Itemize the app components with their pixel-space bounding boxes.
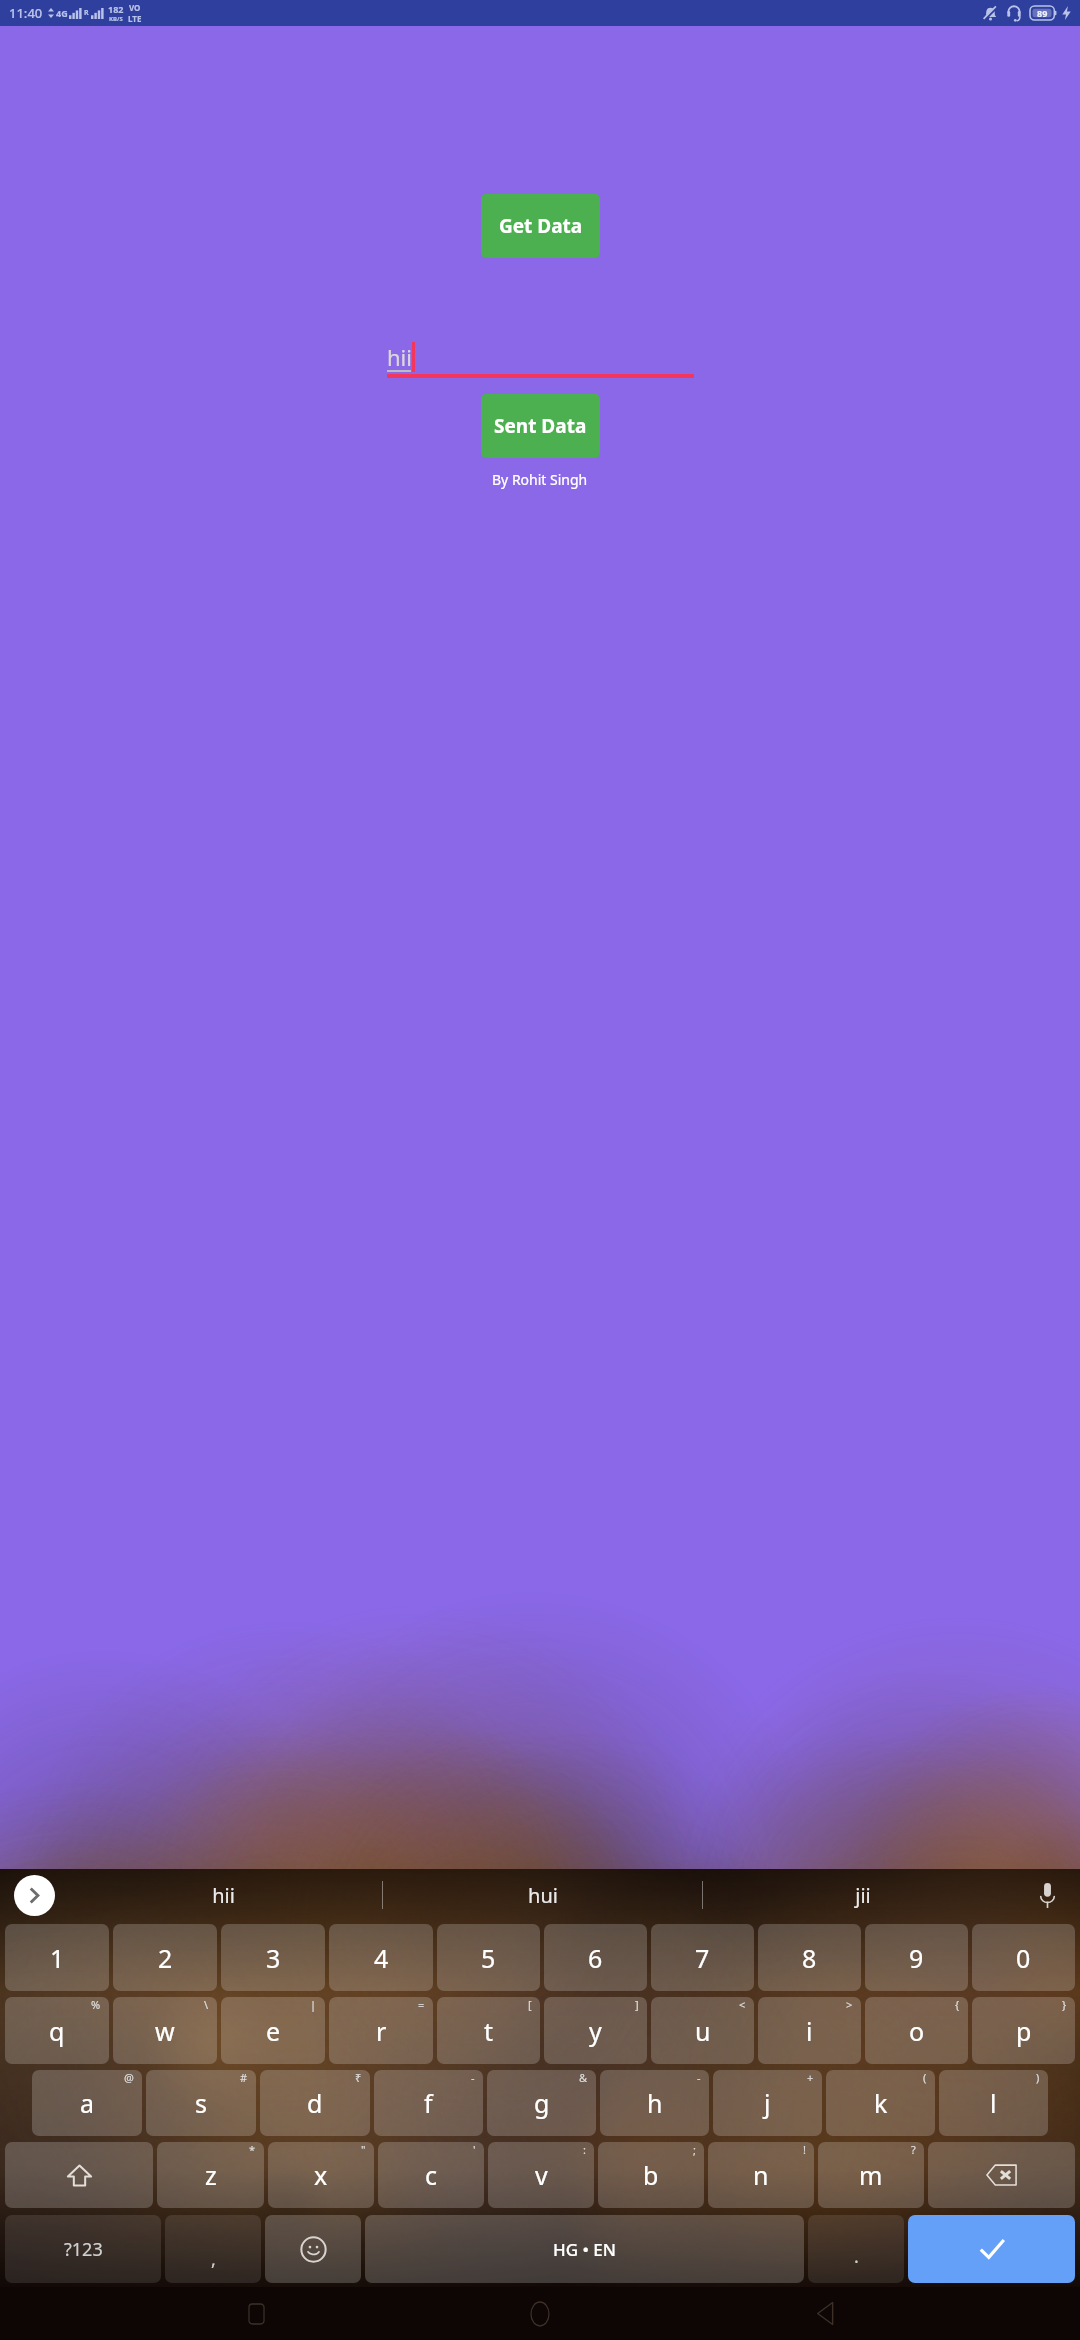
button[interactable]: s <box>146 2070 256 2136</box>
button[interactable]: o <box>865 1997 968 2064</box>
staticText: 8 <box>802 1941 817 1975</box>
staticText: jii <box>855 1882 871 1909</box>
staticText: Sent Data <box>494 413 587 439</box>
staticText: ₹ <box>355 2070 362 2085</box>
button[interactable]: Back <box>796 2287 854 2340</box>
button[interactable]: a <box>32 2070 142 2136</box>
staticText: f <box>424 2086 433 2120</box>
button[interactable]: k <box>826 2070 935 2136</box>
staticText: 89 <box>1037 7 1048 19</box>
other: Battery 89 percent <box>1030 6 1057 20</box>
button[interactable]: l <box>939 2070 1048 2136</box>
button[interactable]: 0 <box>972 1924 1075 1991</box>
button[interactable]: hui <box>383 1869 702 1921</box>
staticText: - <box>697 2070 701 2085</box>
button[interactable]: 2 <box>113 1924 217 1991</box>
button[interactable]: y <box>544 1997 647 2064</box>
button[interactable]: c <box>378 2142 484 2208</box>
staticText: HG • EN <box>553 2238 616 2261</box>
button[interactable]: Recent apps <box>227 2287 285 2340</box>
staticText: ] <box>635 1997 639 2012</box>
button[interactable]: g <box>487 2070 596 2136</box>
button[interactable]: hii <box>387 334 694 378</box>
button[interactable]: j <box>713 2070 822 2136</box>
staticText: hui <box>528 1882 558 1909</box>
button[interactable]: q <box>5 1997 109 2064</box>
button[interactable]: f <box>374 2070 483 2136</box>
staticText: h <box>647 2086 663 2120</box>
staticText: ! <box>803 2142 806 2157</box>
button[interactable]: hii <box>64 1869 382 1921</box>
button[interactable]: 6 <box>544 1924 647 1991</box>
staticText: [ <box>528 1997 532 2012</box>
staticText: 4G <box>56 7 68 19</box>
button[interactable]: 5 <box>437 1924 540 1991</box>
staticText: c <box>425 2158 438 2192</box>
staticText: , <box>211 2247 216 2272</box>
staticText: t <box>484 2014 494 2048</box>
staticText: 6 <box>588 1941 603 1975</box>
button[interactable]: Sent Data <box>481 394 600 458</box>
button[interactable]: Get Data <box>481 194 600 258</box>
button[interactable]: jii <box>703 1869 1022 1921</box>
button[interactable]: Backspace <box>928 2142 1075 2208</box>
staticText: % <box>91 1997 101 2012</box>
button[interactable]: p <box>972 1997 1075 2064</box>
button[interactable]: z <box>157 2142 264 2208</box>
staticText: 2 <box>158 1941 173 1975</box>
staticText: . <box>854 2244 859 2269</box>
button[interactable]: Shift <box>5 2142 153 2208</box>
staticText: n <box>753 2158 769 2192</box>
other: Headset <box>1006 5 1022 21</box>
button[interactable]: 3 <box>221 1924 325 1991</box>
button[interactable]: HG • EN <box>365 2215 804 2283</box>
staticText: z <box>205 2158 217 2192</box>
staticText: ? <box>911 2142 916 2157</box>
staticText: j <box>764 2086 771 2120</box>
staticText: + <box>807 2070 814 2085</box>
button[interactable]: Home <box>511 2287 569 2340</box>
staticText: 3 <box>266 1941 281 1975</box>
button[interactable]: b <box>598 2142 704 2208</box>
staticText: p <box>1016 2014 1032 2048</box>
staticText: 5 <box>481 1941 496 1975</box>
staticText: i <box>806 2014 813 2048</box>
button[interactable]: . <box>808 2215 904 2283</box>
staticText: ; <box>693 2142 696 2157</box>
button[interactable]: 7 <box>651 1924 754 1991</box>
button[interactable]: 4 <box>329 1924 433 1991</box>
staticText: { <box>955 1997 960 2012</box>
staticText: ' <box>473 2142 476 2157</box>
staticText: q <box>49 2014 65 2048</box>
button[interactable]: More suggestions <box>14 1875 55 1916</box>
button[interactable]: i <box>758 1997 861 2064</box>
staticText: hii <box>212 1882 235 1909</box>
button[interactable]: Emoji <box>265 2215 361 2283</box>
button[interactable]: n <box>708 2142 814 2208</box>
button[interactable]: t <box>437 1997 540 2064</box>
button[interactable]: 9 <box>865 1924 968 1991</box>
button[interactable]: , <box>165 2215 261 2283</box>
button[interactable]: u <box>651 1997 754 2064</box>
button[interactable]: r <box>329 1997 433 2064</box>
staticText: * <box>249 2142 256 2157</box>
button[interactable]: 8 <box>758 1924 861 1991</box>
staticText: R <box>84 8 89 18</box>
button[interactable]: h <box>600 2070 709 2136</box>
button[interactable]: e <box>221 1997 325 2064</box>
button[interactable]: w <box>113 1997 217 2064</box>
staticText: g <box>534 2086 550 2120</box>
staticText: v <box>535 2158 548 2192</box>
button[interactable]: Enter <box>908 2215 1075 2283</box>
button[interactable]: ?123 <box>5 2215 161 2283</box>
button[interactable]: Voice input <box>1030 1878 1064 1912</box>
staticText: LTE <box>128 13 142 24</box>
staticText: # <box>240 2070 248 2085</box>
staticText: ( <box>923 2070 927 2085</box>
staticText: s <box>195 2086 207 2120</box>
button[interactable]: d <box>260 2070 370 2136</box>
button[interactable]: v <box>488 2142 594 2208</box>
button[interactable]: 1 <box>5 1924 109 1991</box>
button[interactable]: m <box>818 2142 924 2208</box>
button[interactable]: x <box>268 2142 374 2208</box>
